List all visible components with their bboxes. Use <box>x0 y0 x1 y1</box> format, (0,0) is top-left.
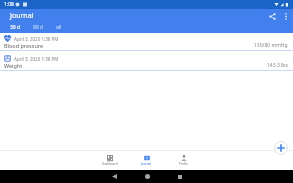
button[interactable]: 30 d <box>0 22 30 33</box>
staticText: all <box>56 24 62 31</box>
button[interactable]: Profile <box>165 150 202 170</box>
button[interactable] <box>274 141 288 155</box>
staticText: 130/80 mmHg <box>254 42 288 49</box>
button[interactable]: April 3, 2020 1:38 PM <box>0 51 293 70</box>
staticText: 1:08 <box>4 1 14 8</box>
staticText: Journal <box>141 162 152 166</box>
button[interactable]: all <box>46 22 72 33</box>
button[interactable]: 90 d <box>30 22 46 33</box>
staticText: Weight <box>4 62 23 69</box>
button[interactable] <box>143 172 152 181</box>
staticText: 90 d <box>33 24 44 31</box>
staticText: April 3, 2020 1:38 PM <box>14 36 59 42</box>
button[interactable] <box>267 11 277 21</box>
button[interactable]: Dashboard <box>91 150 128 170</box>
button[interactable] <box>110 172 119 181</box>
staticText: Blood pressure <box>4 42 44 49</box>
staticText: Journal <box>10 11 34 21</box>
staticText: 143.3 lbs <box>267 62 288 69</box>
button[interactable] <box>175 172 184 181</box>
staticText: 30 d <box>10 24 21 31</box>
staticText: Dashboard <box>102 162 118 166</box>
button[interactable] <box>282 12 290 20</box>
button[interactable]: Journal <box>128 150 165 170</box>
button[interactable]: April 3, 2020 1:38 PM <box>0 33 293 50</box>
staticText: Profile <box>179 162 189 166</box>
staticText: April 3, 2020 1:38 PM <box>14 56 59 62</box>
